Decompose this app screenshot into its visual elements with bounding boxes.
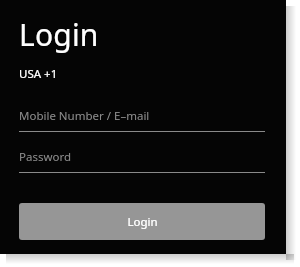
button[interactable]: Mobile Number / E–mail	[19, 108, 265, 132]
staticText: Login	[19, 14, 99, 55]
button[interactable]: Login	[19, 203, 265, 240]
staticText: Login	[127, 214, 158, 230]
staticText: Password	[19, 149, 72, 165]
staticText: Mobile Number / E–mail	[19, 108, 150, 124]
button[interactable]: USA +1	[19, 64, 139, 84]
button[interactable]: Password	[19, 149, 265, 173]
staticText: USA +1	[19, 66, 58, 82]
